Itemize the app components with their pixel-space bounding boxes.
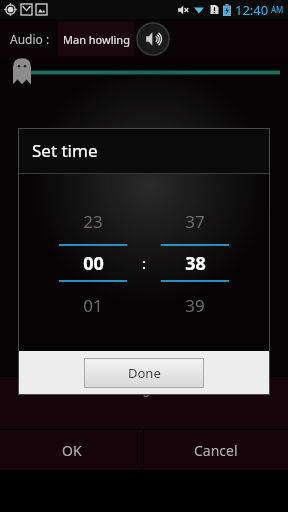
staticText: 12:40 (235, 1, 269, 19)
staticText: : (142, 253, 147, 273)
button[interactable]: Man howling (58, 22, 134, 56)
staticText: 23 (83, 210, 103, 233)
button[interactable]: Play sound (136, 22, 170, 56)
staticText: Man howling (63, 32, 130, 47)
staticText: Set time (32, 139, 98, 162)
button[interactable]: 38 (157, 246, 233, 280)
button[interactable]: 23 (55, 204, 131, 238)
staticText: 38 (185, 251, 206, 276)
button[interactable]: 00 (55, 246, 131, 280)
staticText: OK (62, 441, 82, 460)
staticText: Setting time (110, 381, 179, 397)
staticText: 39 (185, 294, 205, 317)
staticText: 00 (83, 251, 104, 276)
staticText: Done (128, 364, 161, 382)
button[interactable]: OK (0, 430, 143, 470)
button[interactable]: 39 (157, 288, 233, 322)
button[interactable]: Done (84, 358, 204, 388)
staticText: Cancel (194, 441, 238, 460)
staticText: 37 (185, 210, 205, 233)
staticText: Audio : (10, 31, 50, 47)
staticText: 01 (83, 294, 103, 317)
button[interactable]: Cancel (144, 430, 288, 470)
button[interactable]: 01 (55, 288, 131, 322)
button[interactable]: 37 (157, 204, 233, 238)
staticText: AM (271, 4, 284, 15)
